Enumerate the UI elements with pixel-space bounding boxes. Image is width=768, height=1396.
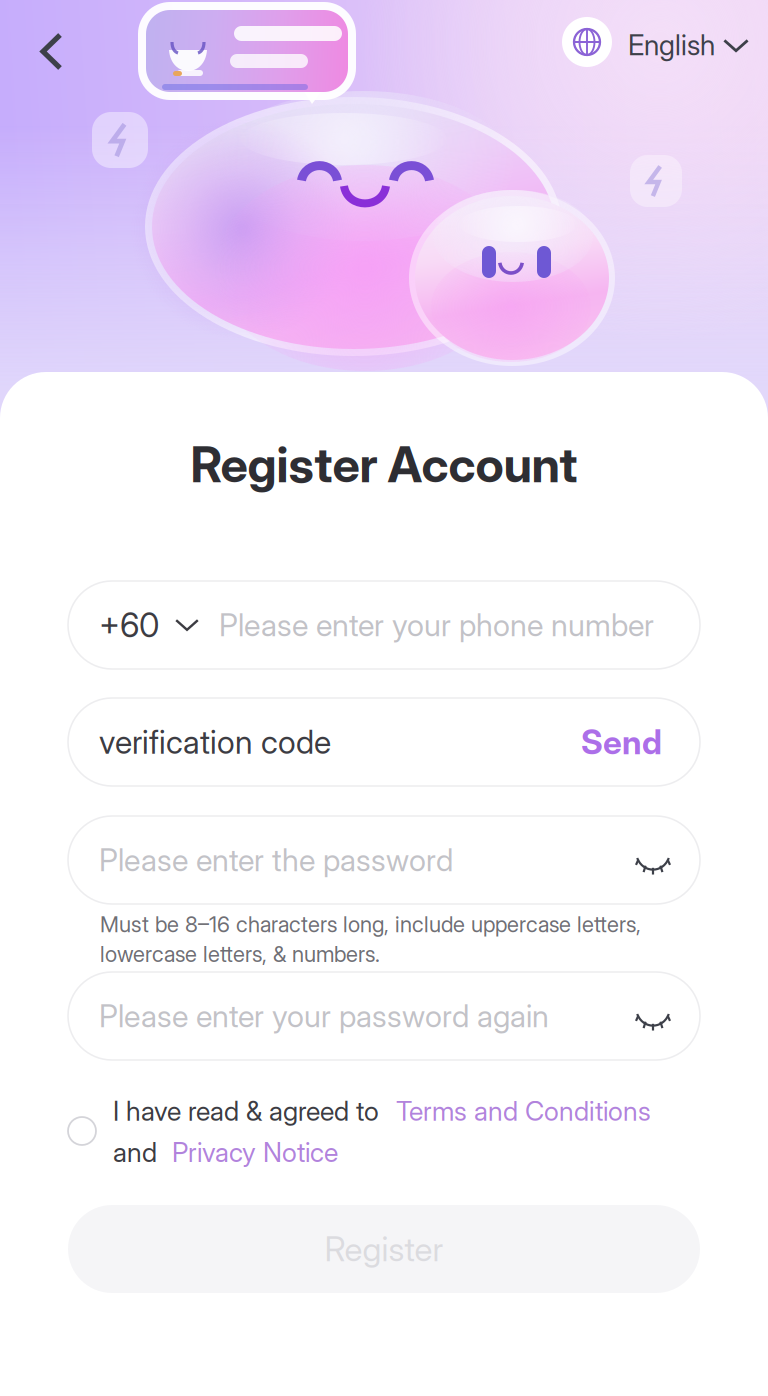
- button[interactable]: Send: [559, 704, 684, 780]
- staticText: lowercase letters, & numbers.: [100, 941, 380, 967]
- button[interactable]: Agree to terms: [58, 1107, 106, 1155]
- staticText: Privacy Notice: [172, 1136, 338, 1169]
- staticText: Please enter your phone number: [219, 606, 654, 643]
- button[interactable]: English: [562, 9, 766, 75]
- staticText: Register: [324, 1229, 443, 1269]
- button[interactable]: Show password: [621, 838, 679, 881]
- staticText: Must be 8–16 characters long, include up…: [100, 911, 641, 938]
- button[interactable]: Back: [24, 17, 79, 86]
- staticText: Please enter the password: [99, 841, 453, 878]
- staticText: verification code: [99, 723, 331, 761]
- button[interactable]: Register: [68, 1205, 700, 1293]
- staticText: English: [628, 28, 715, 62]
- staticText: I have read & agreed to: [113, 1095, 379, 1127]
- staticText: Register Account: [190, 435, 577, 494]
- staticText: and: [113, 1136, 157, 1169]
- staticText: Send: [581, 722, 662, 762]
- button[interactable]: Privacy Notice: [157, 1136, 338, 1169]
- staticText: Terms and Conditions: [396, 1095, 651, 1127]
- button[interactable]: Show confirm password: [621, 994, 679, 1037]
- staticText: Please enter your password again: [99, 997, 549, 1034]
- staticText: +60: [99, 605, 159, 645]
- button[interactable]: Terms and Conditions: [379, 1095, 651, 1127]
